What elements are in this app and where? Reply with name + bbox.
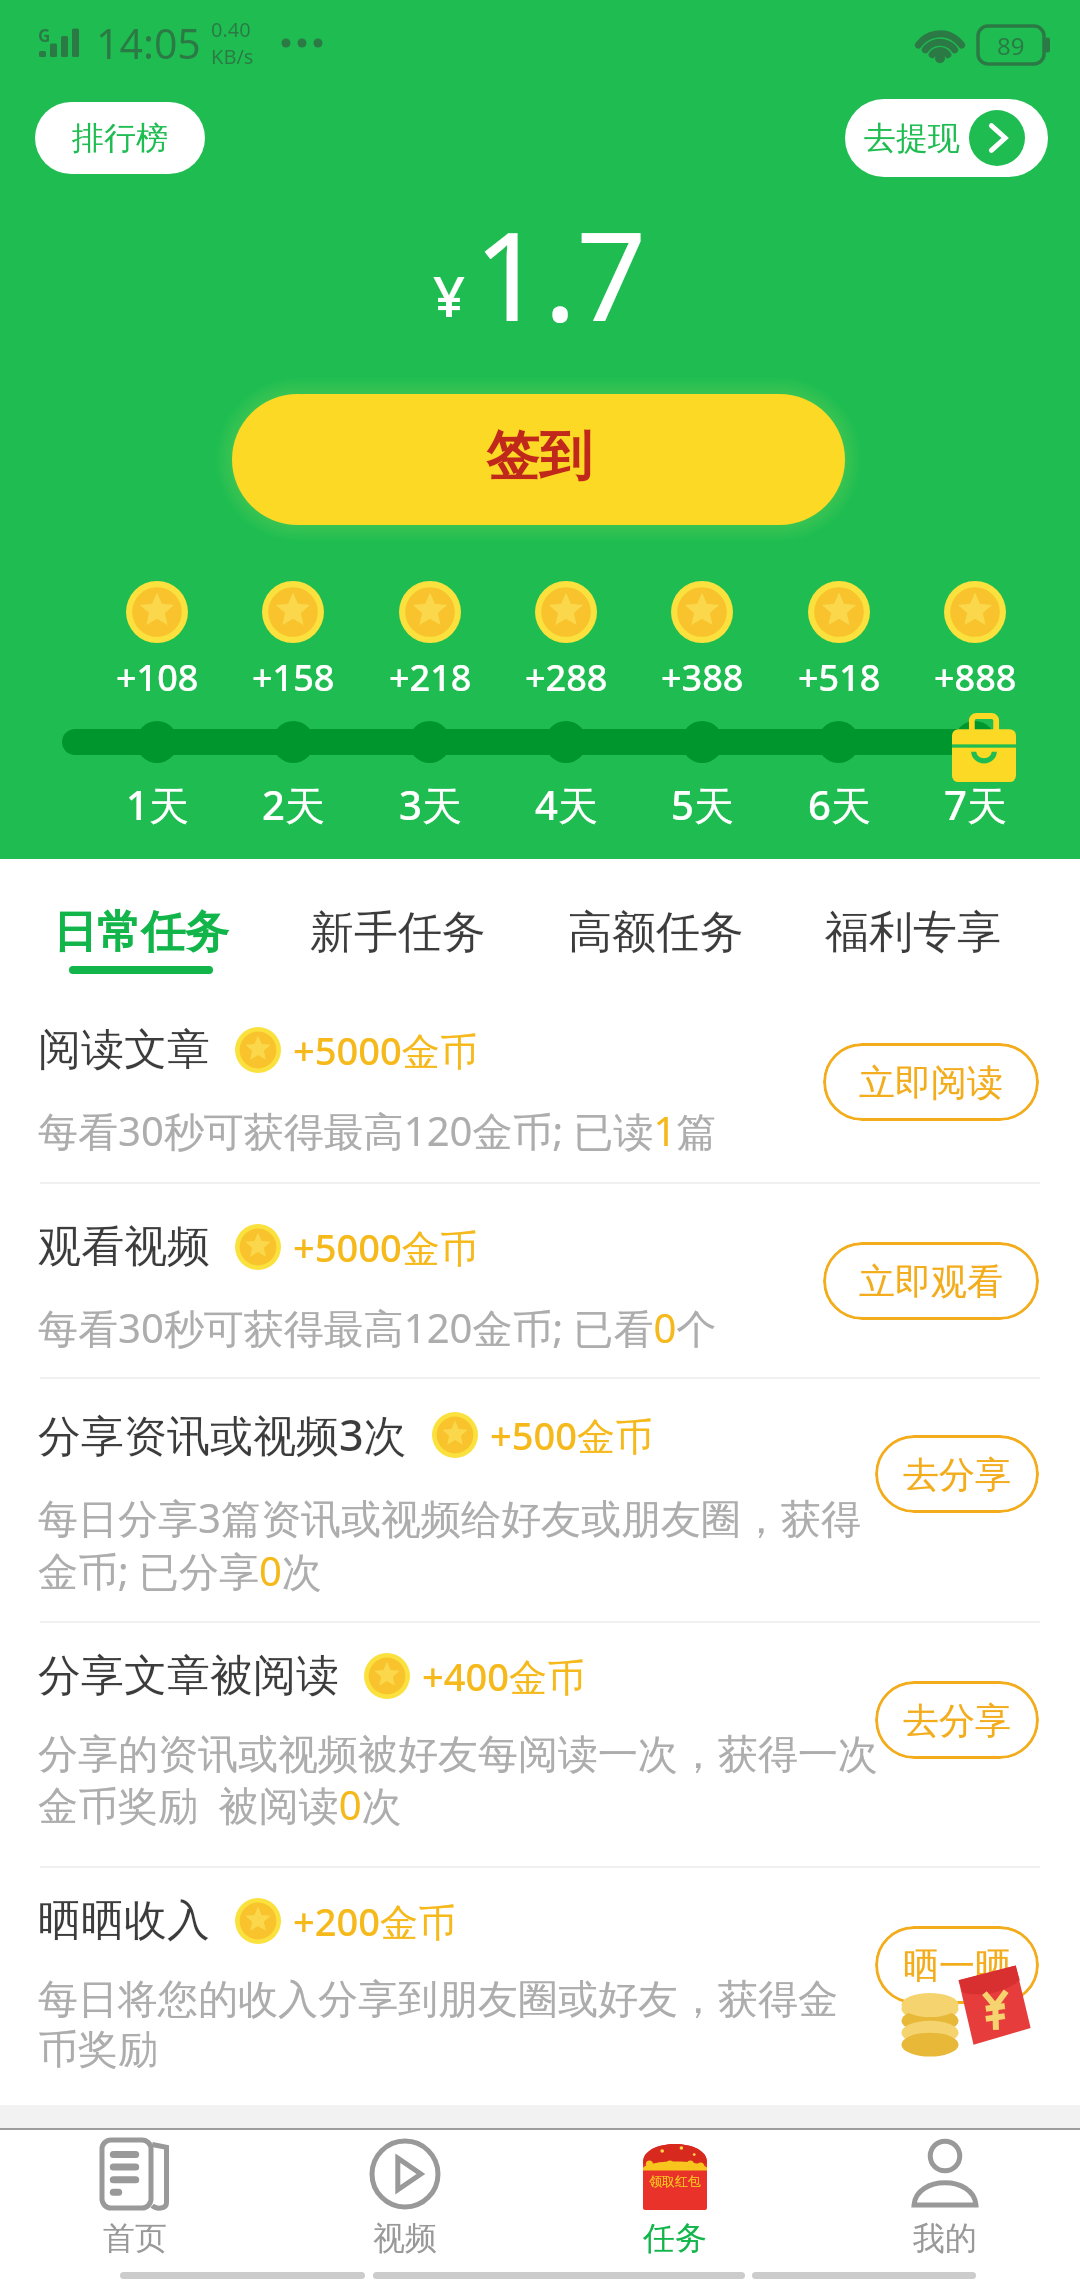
button[interactable]: 日常任务	[13, 859, 269, 987]
staticText: 去提现	[864, 118, 960, 158]
staticText: 晒一晒	[903, 1943, 1011, 1988]
staticText: ¥	[433, 257, 466, 333]
staticText: +5000金币	[293, 1024, 478, 1076]
button[interactable]: 阅读文章	[0, 987, 1080, 1182]
button[interactable]: 排行榜	[35, 102, 205, 174]
staticText: 1天	[126, 777, 189, 832]
staticText: 视频	[373, 2218, 437, 2258]
staticText: 我的	[913, 2218, 977, 2258]
staticText: 任务	[643, 2218, 707, 2258]
staticText: 89	[997, 29, 1025, 62]
button[interactable]: 晒晒收入	[0, 1868, 1080, 2111]
staticText: 每日分享3篇资讯或视频给好友或朋友圈，获得 金币; 已分享0次	[38, 1490, 861, 1598]
staticText: +400金币	[422, 1650, 585, 1702]
staticText: 观看视频	[38, 1220, 210, 1274]
staticText: 福利专享	[825, 905, 1001, 960]
staticText: 首页	[103, 2218, 167, 2258]
staticText: 立即观看	[859, 1259, 1003, 1304]
staticText: 0.40	[211, 16, 251, 43]
staticText: KB/s	[211, 43, 254, 70]
staticText: +388	[661, 653, 744, 702]
staticText: +500金币	[490, 1409, 653, 1461]
staticText: 领取红包	[649, 2173, 701, 2189]
button[interactable]: 立即观看	[823, 1242, 1039, 1320]
staticText: 14:05	[96, 15, 201, 71]
staticText: 日常任务	[53, 905, 229, 960]
staticText: +218	[389, 653, 472, 702]
staticText: 签到	[486, 423, 592, 490]
button[interactable]: 去分享	[875, 1435, 1039, 1513]
button[interactable]: 新手任务	[270, 859, 526, 987]
staticText: +5000金币	[293, 1221, 478, 1273]
button[interactable]: 视频	[270, 2130, 540, 2266]
staticText: 高额任务	[568, 905, 744, 960]
staticText: 4天	[535, 777, 598, 832]
button[interactable]: 立即阅读	[823, 1043, 1039, 1121]
button[interactable]: 高额任务	[528, 859, 784, 987]
button[interactable]: 任务	[540, 2130, 810, 2266]
button[interactable]: 我的	[810, 2130, 1080, 2266]
button[interactable]: 观看视频	[0, 1184, 1080, 1377]
staticText: 去分享	[903, 1698, 1011, 1743]
button[interactable]: 去提现	[845, 99, 1048, 177]
button[interactable]: 分享文章被阅读	[0, 1623, 1080, 1866]
staticText: +108	[116, 653, 199, 702]
staticText: 晒晒收入	[38, 1894, 210, 1948]
staticText: +200金币	[293, 1895, 456, 1947]
button[interactable]: 福利专享	[785, 859, 1041, 987]
staticText: 每看30秒可获得最高120金币; 已读1篇	[38, 1103, 717, 1158]
button[interactable]: 签到	[232, 394, 845, 525]
staticText: 排行榜	[72, 118, 168, 158]
staticText: G	[38, 24, 51, 47]
staticText: 3天	[399, 777, 462, 832]
staticText: 每日将您的收入分享到朋友圈或好友，获得金 币奖励	[38, 1974, 838, 2075]
button[interactable]: 去分享	[875, 1681, 1039, 1759]
staticText: 阅读文章	[38, 1023, 210, 1077]
staticText: 6天	[808, 777, 871, 832]
staticText: 分享文章被阅读	[38, 1649, 339, 1703]
staticText: +518	[798, 653, 881, 702]
staticText: 分享的资讯或视频被好友每阅读一次，获得一次 金币奖励 被阅读0次	[38, 1729, 878, 1832]
staticText: 分享资讯或视频3次	[38, 1405, 407, 1464]
staticText: 立即阅读	[859, 1060, 1003, 1105]
staticText: 新手任务	[310, 905, 486, 960]
button[interactable]: 首页	[0, 2130, 270, 2266]
staticText: 去分享	[903, 1452, 1011, 1497]
staticText: +288	[525, 653, 608, 702]
staticText: 2天	[262, 777, 325, 832]
staticText: 1.7	[474, 191, 647, 357]
staticText: +888	[934, 653, 1017, 702]
staticText: 7天	[944, 777, 1007, 832]
button[interactable]: 分享资讯或视频3次	[0, 1379, 1080, 1621]
button[interactable]: 晒一晒	[875, 1926, 1039, 2004]
staticText: +158	[252, 653, 335, 702]
staticText: 5天	[671, 777, 734, 832]
staticText: 每看30秒可获得最高120金币; 已看0个	[38, 1300, 717, 1355]
